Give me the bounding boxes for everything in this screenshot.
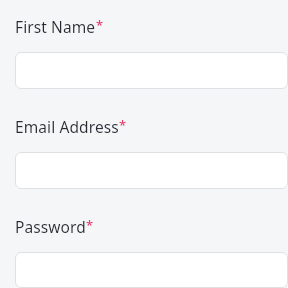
staticText: * (96, 16, 104, 34)
button[interactable]: First Name (15, 52, 288, 89)
staticText: First Name (15, 16, 96, 37)
staticText: * (86, 216, 94, 234)
button[interactable]: Password (15, 252, 288, 288)
staticText: Email Address (15, 116, 119, 137)
staticText: * (119, 116, 127, 134)
staticText: Password (15, 216, 86, 237)
button[interactable]: Email Address (15, 152, 288, 189)
